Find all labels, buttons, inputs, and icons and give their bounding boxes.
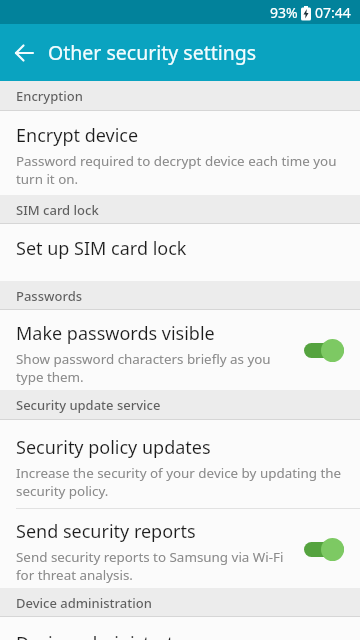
staticText: 07:44: [315, 3, 351, 22]
staticText: Other security settings: [48, 39, 257, 66]
staticText: Increase the security of your device by …: [16, 464, 342, 500]
staticText: Make passwords visible: [16, 321, 215, 346]
staticText: Send security reports to Samsung via Wi-…: [16, 548, 284, 584]
staticText: SIM card lock: [16, 201, 99, 219]
staticText: Show password characters briefly as you …: [16, 350, 271, 386]
staticText: Device administrators: [16, 631, 201, 640]
staticText: Encrypt device: [16, 123, 139, 148]
staticText: Encryption: [16, 87, 83, 105]
staticText: Passwords: [16, 287, 83, 305]
staticText: Send security reports: [16, 519, 196, 544]
button[interactable]: [0, 24, 48, 81]
button[interactable]: Security policy updates: [0, 420, 360, 508]
staticText: 93%: [270, 3, 298, 22]
button[interactable]: Set up SIM card lock: [0, 224, 360, 281]
staticText: Security update service: [16, 396, 161, 414]
button[interactable]: [304, 338, 344, 362]
button[interactable]: Device administrators: [0, 617, 360, 640]
button[interactable]: Make passwords visible: [0, 310, 360, 390]
staticText: Password required to decrypt device each…: [16, 152, 337, 188]
staticText: Device administration: [16, 594, 152, 612]
staticText: Security policy updates: [16, 435, 211, 460]
staticText: Set up SIM card lock: [16, 236, 187, 261]
button[interactable]: Send security reports: [0, 509, 360, 588]
button[interactable]: Encrypt device: [0, 111, 360, 195]
button[interactable]: [304, 537, 344, 561]
